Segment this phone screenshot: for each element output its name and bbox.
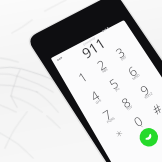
button[interactable]: Phone dialer showing 911 xyxy=(0,0,162,162)
